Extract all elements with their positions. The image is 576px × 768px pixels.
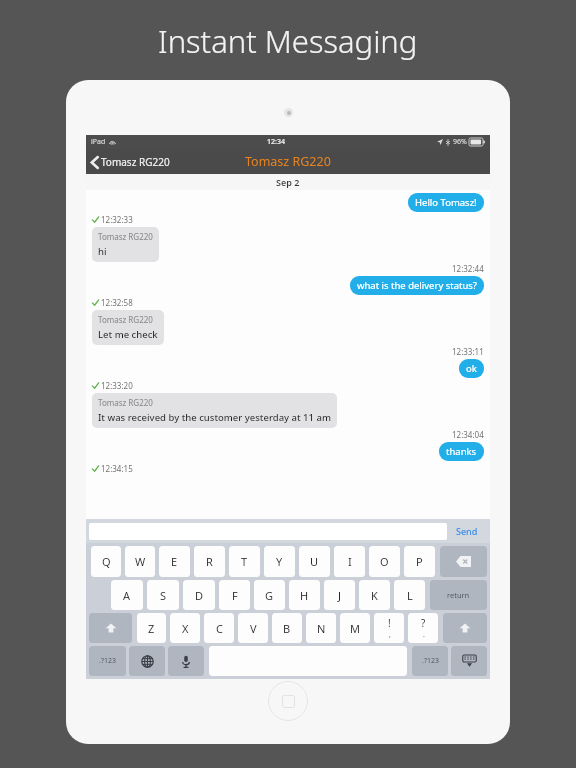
staticText: 12:33:20 [101,380,133,391]
button[interactable]: O [369,546,400,577]
staticText: A [123,588,131,603]
staticText: X [182,621,189,636]
button[interactable]: Y [264,546,295,577]
staticText: 12:33:11 [452,346,484,357]
button[interactable]: K [359,580,390,610]
staticText: Q [102,554,111,569]
staticText: H [300,588,309,603]
button[interactable]: Dictate [168,646,204,676]
staticText: J [338,588,342,603]
button[interactable]: N [306,613,336,643]
staticText: Tomasz RG220 [98,231,153,242]
button[interactable]: P [404,546,435,577]
button[interactable]: Backspace [440,546,487,577]
staticText: 12:32:44 [452,263,484,274]
button[interactable]: D [183,580,215,610]
button[interactable]: L [394,580,425,610]
button[interactable]: Hide keyboard [451,646,487,676]
button[interactable]: Send [447,519,487,543]
staticText: 12:34:04 [452,429,484,440]
staticText: .?123 [99,656,116,666]
staticText: , [389,630,391,640]
button[interactable]: A [111,580,143,610]
button[interactable]: ? [408,613,438,643]
staticText: S [160,588,167,603]
button[interactable]: Numbers [89,646,126,676]
staticText: Z [148,621,155,636]
button[interactable]: what is the delivery status? [350,276,484,295]
button[interactable]: Language [129,646,165,676]
button[interactable]: U [299,546,330,577]
button[interactable]: Tomasz RG220 [91,155,170,169]
button[interactable]: thanks [439,442,484,461]
staticText: T [241,554,248,569]
staticText: V [250,621,257,636]
staticText: .?123 [422,656,439,666]
staticText: L [407,588,413,603]
staticText: Tomasz RG220 [101,155,170,169]
button[interactable]: W [125,546,155,577]
button[interactable]: J [324,580,355,610]
staticText: R [206,554,213,569]
staticText: I [348,554,352,569]
button[interactable]: Numbers [412,646,448,676]
staticText: what is the delivery status? [357,279,477,292]
staticText: . [423,630,425,640]
button[interactable]: Tomasz RG220 [92,227,159,262]
other: Backspace [456,556,471,567]
button[interactable]: H [289,580,320,610]
button[interactable]: Tomasz RG220 [92,393,337,428]
button[interactable]: I [334,546,365,577]
button[interactable]: C [204,613,234,643]
staticText: O [380,554,389,569]
staticText: Let me check [98,328,158,341]
button[interactable]: B [272,613,302,643]
staticText: 96% [453,137,467,147]
staticText: ok [466,362,477,375]
staticText: hi [98,245,107,258]
button[interactable]: M [340,613,370,643]
staticText: G [265,588,274,603]
button[interactable]: F [219,580,250,610]
button[interactable]: ok [459,359,484,378]
staticText: 12:34:15 [101,463,133,474]
button[interactable]: Shift [89,613,132,643]
button[interactable]: Q [91,546,121,577]
button[interactable]: R [194,546,225,577]
button[interactable]: X [170,613,200,643]
staticText: Sep 2 [276,176,300,188]
button[interactable]: G [254,580,285,610]
staticText: ? [421,616,426,630]
staticText: Y [276,554,283,569]
staticText: U [310,554,319,569]
staticText: P [416,554,423,569]
button[interactable]: Tomasz RG220 [92,310,164,345]
staticText: ! [388,616,391,630]
button[interactable]: V [238,613,268,643]
staticText: Tomasz RG220 [245,153,331,170]
staticText: return [447,590,470,600]
staticText: 12:34 [267,137,285,147]
staticText: iPad [91,137,106,147]
staticText: W [135,554,146,569]
staticText: B [283,621,291,636]
staticText: Send [456,525,478,537]
staticText: E [171,554,178,569]
button[interactable]: Z [137,613,166,643]
button[interactable]: ! [374,613,404,643]
button[interactable]: E [159,546,190,577]
staticText: K [371,588,378,603]
button[interactable]: T [229,546,260,577]
staticText: 12:32:33 [101,214,133,225]
button[interactable]: S [147,580,179,610]
staticText: Tomasz RG220 [98,397,153,408]
button[interactable]: Home [268,681,308,721]
button[interactable]: Shift [443,613,487,643]
staticText: Tomasz RG220 [98,314,153,325]
staticText: C [216,621,223,636]
button[interactable]: return [430,580,487,610]
staticText: N [317,621,326,636]
button[interactable]: Hello Tomasz! [408,193,484,212]
